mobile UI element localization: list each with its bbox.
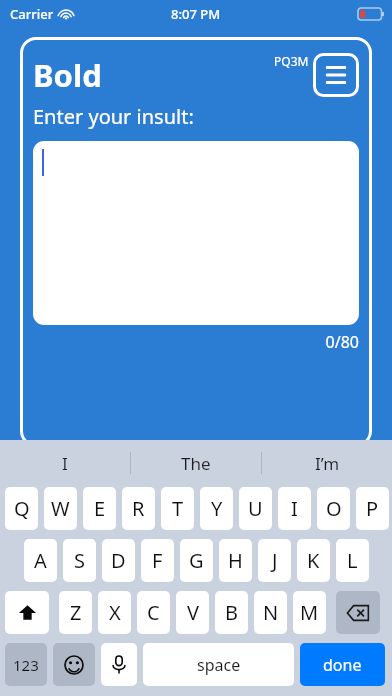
button[interactable]: P	[356, 487, 389, 530]
staticText: S	[74, 547, 85, 574]
button[interactable]: Dictate	[101, 643, 137, 686]
staticText: I	[62, 452, 68, 475]
staticText: Y	[211, 495, 223, 522]
staticText: done	[323, 654, 362, 676]
button[interactable]: V	[176, 591, 209, 634]
staticText: Enter your insult:	[33, 103, 194, 130]
staticText: L	[347, 547, 358, 574]
button[interactable]: O	[317, 487, 350, 530]
button[interactable]: Menu	[313, 53, 359, 97]
button[interactable]: Shift	[5, 591, 49, 634]
staticText: X	[109, 599, 121, 626]
staticText: 8:07 PM	[171, 5, 221, 23]
button[interactable]: K	[297, 539, 330, 582]
button[interactable]: J	[258, 539, 291, 582]
staticText: I	[291, 495, 298, 522]
staticText: 0/80	[33, 331, 359, 353]
staticText: Z	[70, 599, 82, 626]
button[interactable]: W	[44, 487, 77, 530]
button[interactable]: Q	[5, 487, 38, 530]
button[interactable]: C	[137, 591, 170, 634]
button[interactable]: X	[98, 591, 131, 634]
button[interactable]: The	[131, 440, 261, 486]
staticText: G	[189, 547, 204, 574]
staticText: E	[94, 495, 106, 522]
button[interactable]: B	[215, 591, 248, 634]
button[interactable]	[33, 141, 359, 325]
staticText: R	[132, 495, 145, 522]
button[interactable]: R	[122, 487, 155, 530]
button[interactable]: Y	[200, 487, 233, 530]
staticText: M	[300, 599, 319, 626]
staticText: The	[181, 452, 211, 475]
staticText: K	[307, 547, 320, 574]
staticText: Bold	[33, 54, 102, 96]
button[interactable]: 123	[5, 643, 47, 686]
staticText: J	[272, 547, 278, 574]
staticText: B	[225, 599, 238, 626]
staticText: D	[111, 547, 126, 574]
button[interactable]: S	[63, 539, 96, 582]
staticText: Carrier	[10, 5, 54, 23]
staticText: O	[326, 495, 342, 522]
button[interactable]: T	[161, 487, 194, 530]
button[interactable]: done	[300, 643, 385, 686]
button[interactable]: H	[219, 539, 252, 582]
staticText: 123	[13, 655, 39, 675]
staticText: U	[248, 495, 263, 522]
button[interactable]: Z	[59, 591, 92, 634]
staticText: P	[366, 495, 379, 522]
staticText: T	[172, 495, 184, 522]
staticText: C	[147, 599, 160, 626]
button[interactable]: U	[239, 487, 272, 530]
staticText: space	[197, 654, 241, 676]
staticText: I’m	[315, 452, 340, 475]
staticText: W	[51, 495, 70, 522]
staticText: F	[152, 547, 163, 574]
button[interactable]: G	[180, 539, 213, 582]
staticText: V	[187, 599, 199, 626]
staticText: Q	[14, 495, 30, 522]
button[interactable]: I	[278, 487, 311, 530]
button[interactable]: F	[141, 539, 174, 582]
button[interactable]: I’m	[262, 440, 392, 486]
button[interactable]: D	[102, 539, 135, 582]
button[interactable]: A	[24, 539, 57, 582]
button[interactable]: E	[83, 487, 116, 530]
button[interactable]: N	[254, 591, 287, 634]
button[interactable]: space	[143, 643, 294, 686]
staticText: H	[228, 547, 243, 574]
button[interactable]: M	[293, 591, 326, 634]
button[interactable]: L	[336, 539, 369, 582]
button[interactable]: I	[0, 440, 130, 486]
staticText: PQ3M	[274, 53, 309, 69]
button[interactable]: Backspace	[336, 591, 380, 634]
staticText: A	[34, 547, 47, 574]
staticText: N	[263, 599, 279, 626]
button[interactable]: Emoji	[53, 643, 95, 686]
